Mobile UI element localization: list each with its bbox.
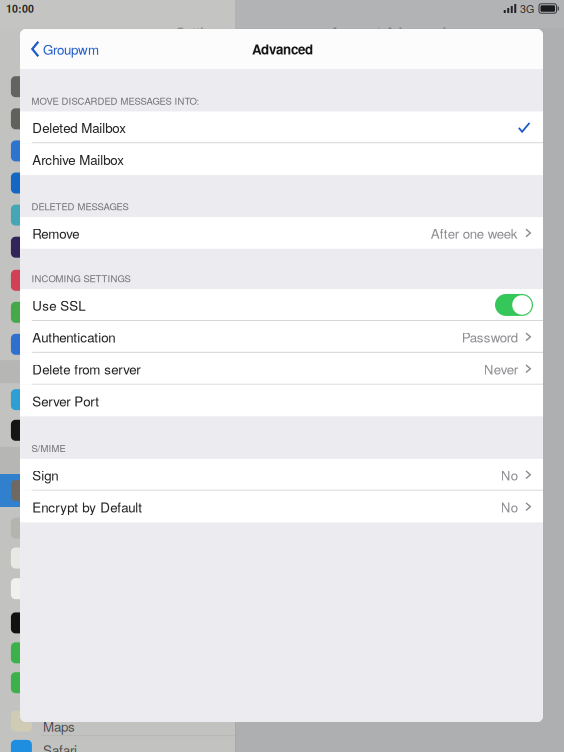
staticText: DELETED MESSAGES [31,199,128,213]
staticText: Account Advanced [330,22,446,42]
staticText: Deleted Mailbox [32,118,126,137]
staticText: Encrypt by Default [32,497,142,516]
staticText: S/MIME [31,441,65,455]
button[interactable]: Remove [20,217,543,249]
staticText: Maps [43,716,75,736]
staticText: Advanced [252,39,313,59]
button[interactable]: Use SSL [495,294,533,316]
button[interactable]: Delete from server [20,353,543,385]
staticText: Use SSL [32,295,85,314]
staticText: Safari [43,740,77,752]
button[interactable]: Groupwm [20,29,107,69]
staticText: No [501,497,518,516]
button[interactable]: Encrypt by Default [20,491,543,523]
staticText: MOVE DISCARDED MESSAGES INTO: [31,94,199,107]
button[interactable]: Sign [20,459,543,491]
staticText: After one week [431,223,518,242]
staticText: Password [462,327,518,346]
staticText: Archive Mailbox [32,150,124,169]
staticText: Remove [32,223,79,242]
staticText: Authentication [32,327,115,346]
button[interactable]: Archive Mailbox [20,143,543,175]
staticText: Groupwm [43,39,99,59]
staticText: No [501,465,518,484]
button[interactable]: Authentication [20,321,543,353]
staticText: Settings [176,22,227,42]
staticText: Never [484,359,518,378]
staticText: Server Port [32,391,99,410]
button[interactable]: Deleted Mailbox [20,111,543,143]
staticText: 10:00 [6,1,34,16]
staticText: 3G [520,1,534,16]
staticText: Delete from server [32,359,140,378]
staticText: INCOMING SETTINGS [31,271,130,285]
staticText: Sign [32,465,58,484]
button[interactable]: Server Port [20,385,543,417]
